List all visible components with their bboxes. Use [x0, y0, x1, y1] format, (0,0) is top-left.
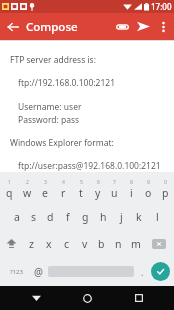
- staticText: FTP server address is:: [10, 54, 96, 66]
- button[interactable]: Shift: [0, 230, 22, 257]
- staticText: r: [61, 186, 66, 200]
- staticText: u: [111, 186, 118, 200]
- button[interactable]: 9: [140, 176, 157, 203]
- staticText: ftp://user:pass@192.168.0.100:2121: [18, 160, 161, 172]
- staticText: a: [14, 210, 20, 224]
- staticText: y: [95, 186, 101, 200]
- staticText: 7: [113, 179, 116, 186]
- staticText: i: [130, 186, 133, 200]
- staticText: l: [156, 210, 159, 224]
- button[interactable]: v: [76, 230, 93, 257]
- button[interactable]: k: [130, 203, 148, 230]
- button[interactable]: 2: [18, 176, 36, 203]
- button[interactable]: @: [29, 257, 48, 286]
- staticText: w: [23, 186, 32, 200]
- staticText: s: [31, 210, 37, 224]
- button[interactable]: Enter: [151, 262, 170, 281]
- staticText: @: [34, 265, 43, 279]
- button[interactable]: Send: [133, 16, 154, 37]
- staticText: 0: [164, 179, 167, 186]
- staticText: ftp://192.168.0.100:2121: [18, 77, 116, 89]
- button[interactable]: j: [112, 203, 130, 230]
- button[interactable]: 6: [89, 176, 106, 203]
- button[interactable]: .: [134, 257, 151, 286]
- button[interactable]: a: [8, 203, 25, 230]
- staticText: 8: [130, 179, 133, 186]
- button[interactable]: Backspace: [144, 230, 174, 257]
- button[interactable]: f: [59, 203, 76, 230]
- staticText: t: [79, 186, 83, 200]
- staticText: e: [42, 186, 48, 200]
- button[interactable]: s: [25, 203, 42, 230]
- staticText: 3: [44, 179, 47, 186]
- staticText: o: [145, 186, 152, 200]
- staticText: Compose: [26, 19, 78, 35]
- button[interactable]: 4: [54, 176, 72, 203]
- button[interactable]: 0: [157, 176, 174, 203]
- staticText: c: [64, 237, 70, 251]
- button[interactable]: Recents: [123, 286, 155, 310]
- button[interactable]: Attach: [112, 16, 133, 37]
- staticText: p: [162, 186, 169, 200]
- button[interactable]: z: [22, 230, 40, 257]
- staticText: ?123: [10, 268, 23, 276]
- staticText: q: [6, 186, 13, 200]
- staticText: 9: [147, 179, 150, 186]
- staticText: Windows Explorer format:: [10, 137, 114, 149]
- button[interactable]: d: [42, 203, 59, 230]
- staticText: 4: [62, 179, 65, 186]
- staticText: v: [82, 237, 88, 251]
- staticText: k: [136, 210, 142, 224]
- button[interactable]: More options: [154, 18, 172, 36]
- button[interactable]: 7: [106, 176, 123, 203]
- button[interactable]: Back: [20, 286, 52, 310]
- staticText: Password: pass: [18, 114, 80, 126]
- staticText: m: [131, 237, 141, 251]
- staticText: d: [47, 210, 54, 224]
- staticText: z: [29, 237, 34, 251]
- staticText: Username: user: [18, 101, 82, 113]
- button[interactable]: x: [40, 230, 58, 257]
- staticText: b: [98, 237, 105, 251]
- staticText: g: [82, 210, 89, 224]
- button[interactable]: c: [58, 230, 76, 257]
- button[interactable]: 3: [36, 176, 54, 203]
- button[interactable]: n: [110, 230, 127, 257]
- staticText: h: [100, 210, 107, 224]
- button[interactable]: l: [148, 203, 166, 230]
- staticText: n: [115, 237, 122, 251]
- button[interactable]: b: [93, 230, 110, 257]
- button[interactable]: 1: [0, 176, 18, 203]
- button[interactable]: g: [76, 203, 94, 230]
- button[interactable]: Home: [71, 286, 103, 310]
- staticText: 1: [8, 179, 11, 186]
- staticText: x: [46, 237, 52, 251]
- staticText: 2: [26, 179, 29, 186]
- staticText: f: [66, 210, 70, 224]
- staticText: .: [141, 266, 144, 278]
- button[interactable]: Back: [0, 14, 26, 40]
- button[interactable]: h: [94, 203, 112, 230]
- button[interactable]: 5: [72, 176, 89, 203]
- staticText: j: [120, 210, 123, 224]
- staticText: 6: [97, 179, 100, 186]
- button[interactable]: 8: [123, 176, 140, 203]
- staticText: 5: [80, 179, 83, 186]
- staticText: 17:00: [151, 1, 172, 12]
- button[interactable]: ?123: [3, 257, 29, 286]
- button[interactable]: m: [127, 230, 144, 257]
